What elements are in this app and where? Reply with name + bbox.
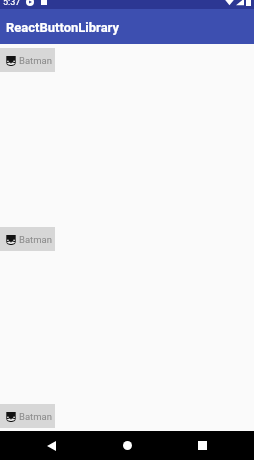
button[interactable]: Back bbox=[31, 431, 71, 460]
staticText: Batman bbox=[19, 234, 52, 245]
staticText: ReactButtonLibrary bbox=[6, 20, 120, 35]
staticText: Batman bbox=[19, 411, 52, 422]
staticText: Batman bbox=[19, 55, 52, 66]
button[interactable]: Home bbox=[107, 431, 147, 460]
button[interactable]: Batman bbox=[0, 48, 55, 72]
staticText: 5:37 bbox=[3, 0, 21, 6]
button[interactable]: Batman bbox=[0, 404, 55, 428]
button[interactable]: Recents bbox=[182, 431, 222, 460]
button[interactable]: Batman bbox=[0, 227, 55, 251]
